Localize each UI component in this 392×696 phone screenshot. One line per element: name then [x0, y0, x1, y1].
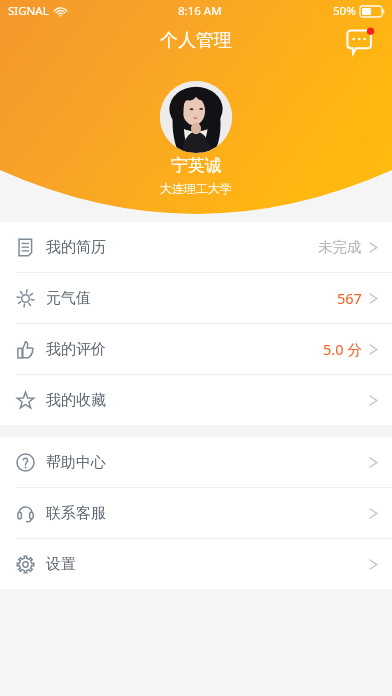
staticText: 未完成	[318, 238, 362, 256]
staticText: 5.0 分	[323, 339, 362, 359]
staticText: 元气值	[46, 289, 91, 308]
staticText: 联系客服	[46, 504, 106, 523]
button[interactable]: Messages	[344, 24, 382, 62]
staticText: 8:16 AM	[178, 3, 222, 19]
staticText: 大连理工大学	[160, 181, 232, 196]
staticText: 个人管理	[160, 29, 232, 52]
staticText: 帮助中心	[46, 453, 106, 472]
staticText: 我的简历	[46, 238, 106, 257]
staticText: 567	[337, 288, 362, 308]
staticText: 50%	[333, 3, 356, 19]
staticText: 我的收藏	[46, 391, 106, 410]
staticText: 我的评价	[46, 340, 106, 359]
button[interactable]: 联系客服	[0, 488, 392, 538]
staticText: 宁英诚	[171, 155, 222, 176]
button[interactable]: 我的评价	[0, 324, 392, 374]
staticText: 设置	[46, 555, 76, 574]
button[interactable]: 我的简历	[0, 222, 392, 272]
staticText: SIGNAL	[8, 3, 49, 19]
button[interactable]: 帮助中心	[0, 437, 392, 487]
button[interactable]: 设置	[0, 539, 392, 589]
button[interactable]: 我的收藏	[0, 375, 392, 425]
button[interactable]: 元气值	[0, 273, 392, 323]
button[interactable]: Avatar	[160, 81, 232, 153]
